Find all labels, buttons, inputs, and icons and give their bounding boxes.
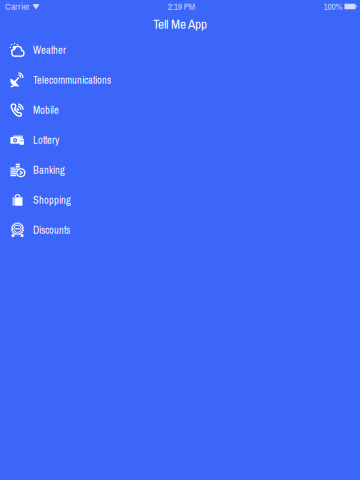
button[interactable]: Mobile: [0, 95, 360, 125]
button[interactable]: Telecommunications: [0, 65, 360, 95]
button[interactable]: Discounts: [0, 215, 360, 245]
staticText: Telecommunications: [33, 73, 111, 87]
staticText: 2:19 PM: [168, 0, 195, 13]
staticText: Weather: [33, 43, 66, 57]
staticText: Mobile: [33, 103, 59, 117]
staticText: Lottery: [33, 133, 59, 147]
staticText: Shopping: [33, 193, 71, 207]
staticText: 100%: [323, 0, 342, 13]
button[interactable]: Lottery: [0, 125, 360, 155]
staticText: Discounts: [33, 223, 70, 237]
button[interactable]: Shopping: [0, 185, 360, 215]
staticText: Banking: [33, 163, 65, 177]
staticText: Tell Me App: [153, 15, 207, 33]
button[interactable]: Weather: [0, 35, 360, 65]
button[interactable]: Banking: [0, 155, 360, 185]
staticText: Carrier: [5, 0, 30, 13]
